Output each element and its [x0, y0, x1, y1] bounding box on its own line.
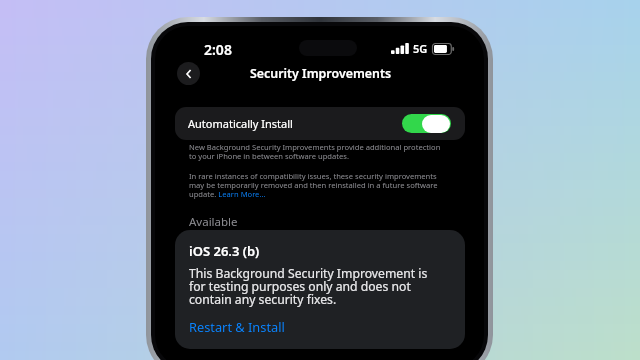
- staticText: 2:08: [204, 40, 232, 56]
- button[interactable]: iOS 26.3 (b): [175, 230, 465, 349]
- staticText: 5G: [413, 41, 428, 56]
- button[interactable]: Back: [177, 62, 200, 85]
- button[interactable]: Restart & Install: [189, 318, 285, 335]
- staticText: New Background Security Improvements pro…: [189, 142, 444, 162]
- staticText: Security Improvements: [250, 65, 392, 82]
- button[interactable]: Automatically Install: [175, 107, 465, 140]
- staticText: Available: [189, 214, 238, 230]
- staticText: iOS 26.3 (b): [189, 242, 260, 260]
- button[interactable]: Automatically Install toggle: [402, 114, 451, 133]
- staticText: Automatically Install: [188, 116, 293, 131]
- staticText: In rare instances of compatibility issue…: [189, 171, 444, 200]
- staticText: This Background Security Improvement is …: [189, 265, 428, 307]
